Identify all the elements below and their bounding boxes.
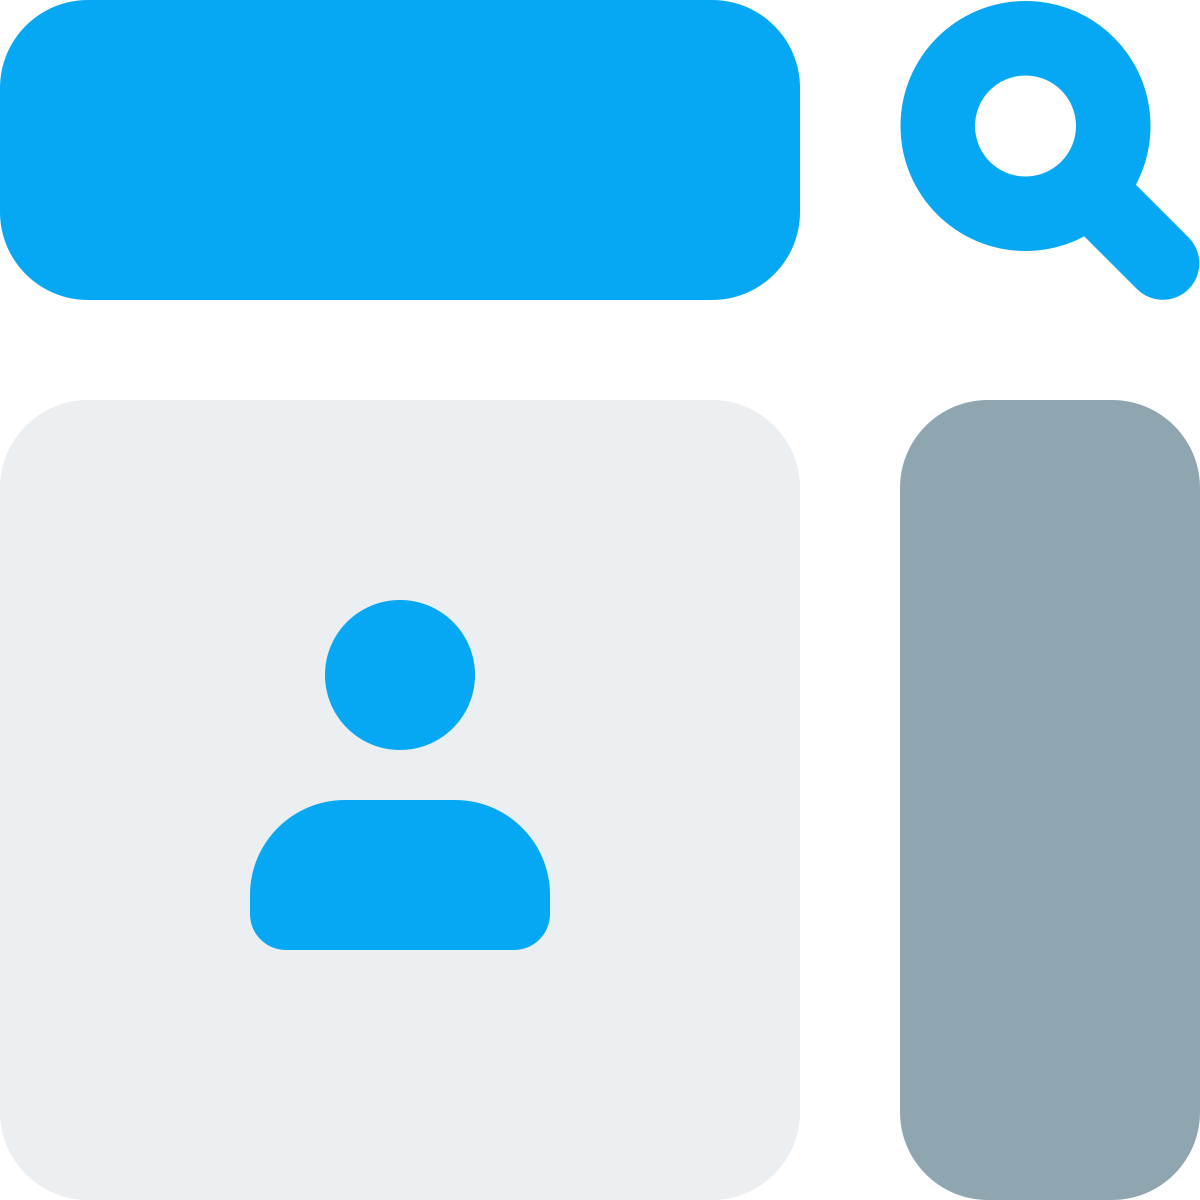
button[interactable]: Search (900, 0, 1200, 300)
button[interactable]: Search field (0, 0, 800, 300)
button[interactable]: Profile (0, 400, 800, 1200)
button[interactable]: Details (900, 400, 1200, 1200)
